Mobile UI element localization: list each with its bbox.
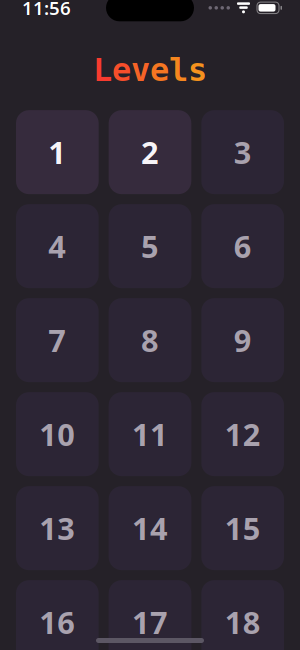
staticText: 9 xyxy=(234,320,252,360)
button[interactable]: 9 xyxy=(201,298,284,382)
button[interactable]: 4 xyxy=(16,204,99,288)
staticText: 2 xyxy=(141,132,159,172)
staticText: 10 xyxy=(39,414,75,454)
staticText: 5 xyxy=(141,226,159,266)
staticText: 16 xyxy=(39,602,75,642)
staticText: L xyxy=(93,52,112,88)
staticText: s xyxy=(188,52,207,88)
button[interactable]: 12 xyxy=(201,392,284,476)
button[interactable]: 7 xyxy=(16,298,99,382)
button[interactable]: 2 xyxy=(109,110,191,194)
staticText: 12 xyxy=(225,414,261,454)
button[interactable]: 11 xyxy=(109,392,191,476)
staticText: e xyxy=(112,52,131,88)
staticText: 11 xyxy=(132,414,168,454)
staticText: 17 xyxy=(132,602,168,642)
button[interactable]: 6 xyxy=(201,204,284,288)
staticText: 8 xyxy=(141,320,159,360)
button[interactable]: 10 xyxy=(16,392,99,476)
button[interactable]: 18 xyxy=(201,580,284,650)
staticText: 15 xyxy=(225,508,261,548)
staticText: 6 xyxy=(234,226,252,266)
staticText: 13 xyxy=(39,508,75,548)
button[interactable]: 15 xyxy=(201,486,284,570)
staticText: v xyxy=(131,52,150,88)
staticText: 1 xyxy=(48,132,66,172)
staticText: 7 xyxy=(48,320,66,360)
button[interactable]: 13 xyxy=(16,486,99,570)
button[interactable]: 3 xyxy=(201,110,284,194)
button[interactable]: 14 xyxy=(109,486,191,570)
button[interactable]: 1 xyxy=(16,110,99,194)
button[interactable]: 17 xyxy=(109,580,191,650)
staticText: 18 xyxy=(225,602,261,642)
staticText: 14 xyxy=(132,508,168,548)
button[interactable]: 8 xyxy=(109,298,191,382)
staticText: l xyxy=(169,52,188,88)
staticText: 4 xyxy=(48,226,66,266)
button[interactable]: 16 xyxy=(16,580,99,650)
staticText: e xyxy=(150,52,169,88)
staticText: 11:56 xyxy=(22,0,71,20)
button[interactable]: 5 xyxy=(109,204,191,288)
staticText: 3 xyxy=(234,132,252,172)
